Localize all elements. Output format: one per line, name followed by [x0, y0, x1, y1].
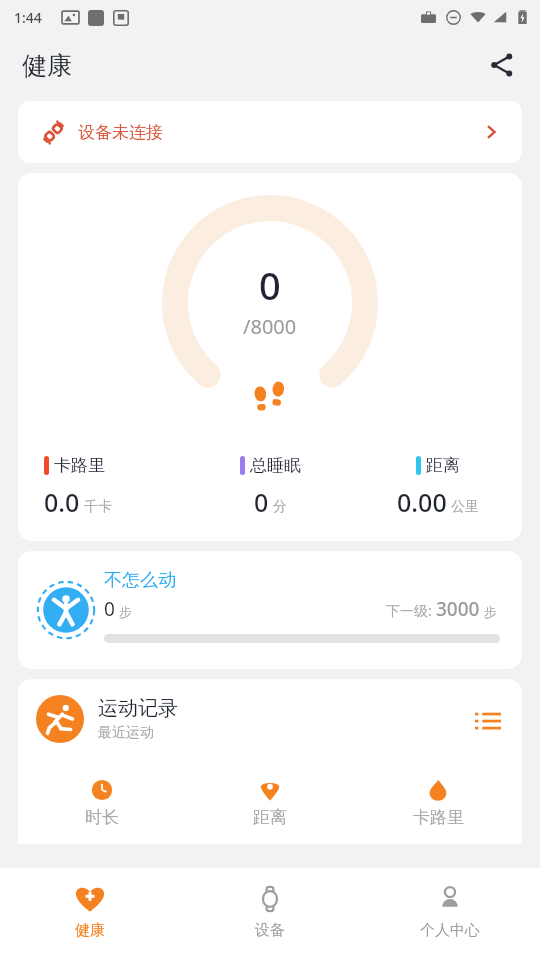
button[interactable]: 健康	[0, 868, 180, 960]
staticText: 健康	[22, 50, 72, 81]
staticText: /8000	[243, 313, 297, 340]
button[interactable]: 时长	[18, 779, 186, 828]
staticText: 0	[104, 596, 115, 622]
button[interactable]: 设备未连接	[18, 101, 522, 163]
staticText: 0	[254, 485, 269, 519]
staticText: 卡路里	[413, 807, 464, 828]
staticText: 不怎么动	[104, 569, 176, 592]
staticText: 距离	[253, 807, 287, 828]
button[interactable]: 卡路里	[354, 779, 522, 828]
staticText: 千卡	[84, 498, 112, 516]
staticText: 运动记录	[98, 696, 178, 721]
staticText: 健康	[75, 921, 105, 940]
staticText: 0.0	[44, 485, 80, 519]
button[interactable]: Share	[480, 43, 524, 87]
staticText: 最近运动	[98, 724, 154, 742]
staticText: 公里	[451, 498, 479, 516]
staticText: 设备	[255, 921, 285, 940]
staticText: 步	[484, 604, 497, 620]
staticText: 卡路里	[54, 455, 105, 476]
staticText: 0.00	[397, 485, 447, 519]
button[interactable]: 运动记录	[18, 679, 522, 844]
staticText: 设备未连接	[78, 122, 163, 143]
staticText: 分	[273, 498, 287, 516]
staticText: 0	[259, 259, 281, 311]
staticText: 距离	[426, 455, 460, 476]
staticText: 1:44	[14, 8, 42, 27]
button[interactable]: 0	[18, 173, 522, 541]
button[interactable]: 距离	[186, 779, 354, 828]
button[interactable]: 设备	[180, 868, 360, 960]
staticText: 时长	[85, 807, 119, 828]
staticText: 个人中心	[420, 921, 480, 940]
button[interactable]: 不怎么动	[18, 551, 522, 669]
staticText: 下一级:	[386, 601, 436, 620]
staticText: 步	[119, 604, 132, 620]
button[interactable]: 个人中心	[360, 868, 540, 960]
staticText: 3000	[436, 596, 480, 622]
button[interactable]: 运动列表	[468, 701, 508, 741]
staticText: 总睡眠	[250, 455, 301, 476]
